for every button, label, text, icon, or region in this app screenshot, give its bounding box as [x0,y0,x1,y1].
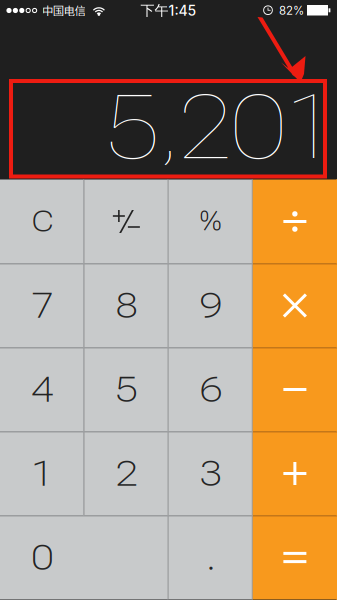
button[interactable]: 6 [168,347,253,431]
button[interactable]: % [168,179,253,263]
button[interactable]: 1 [0,431,84,515]
staticText: 3 [200,452,222,495]
staticText: 5 [115,368,137,411]
button[interactable]: 4 [0,347,84,431]
staticText: 9 [200,284,222,327]
button[interactable] [253,263,337,347]
staticText: C [32,204,53,239]
staticText: . [206,536,215,579]
staticText: 82% [279,4,304,17]
button[interactable] [253,347,337,431]
button[interactable]: 7 [0,263,84,347]
button[interactable] [253,431,337,515]
staticText: 2 [115,452,137,495]
button[interactable]: 2 [84,431,168,515]
button[interactable] [253,179,337,263]
button[interactable]: 8 [84,263,168,347]
staticText: 下午1:45 [140,2,196,19]
staticText: 7 [31,284,53,327]
button[interactable]: 0 [0,515,168,599]
button[interactable] [84,179,168,263]
staticText: 6 [200,368,222,411]
button[interactable]: 5 [84,347,168,431]
staticText: 中国电信 [42,2,85,19]
staticText: % [200,206,222,237]
button[interactable] [253,515,337,599]
button[interactable]: C [0,179,84,263]
button[interactable]: 3 [168,431,253,515]
button[interactable]: 9 [168,263,253,347]
staticText: 4 [31,368,53,411]
staticText: 0 [31,536,53,579]
staticText: 5,201 [104,76,337,179]
button[interactable]: . [168,515,253,599]
staticText: 1 [31,452,53,495]
staticText: 8 [115,284,137,327]
